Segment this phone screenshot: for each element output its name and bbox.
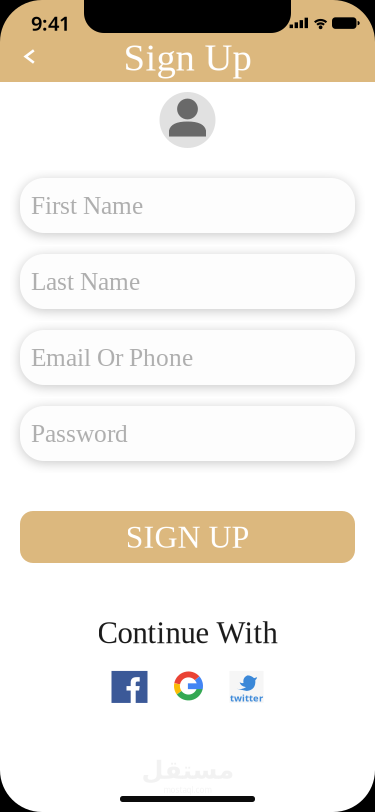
staticText: Password	[31, 419, 128, 448]
button[interactable]: SIGN UP	[20, 511, 355, 563]
staticText: Email Or Phone	[31, 343, 193, 372]
staticText: twitter	[230, 692, 263, 704]
button[interactable]: Continue with Twitter	[229, 671, 263, 703]
staticText: First Name	[31, 191, 143, 220]
staticText: Continue With	[97, 616, 277, 650]
button[interactable]: Continue with Facebook	[111, 671, 147, 703]
staticText: Last Name	[31, 267, 140, 296]
button[interactable]: Back	[0, 37, 55, 76]
staticText: مستقل	[141, 756, 234, 784]
staticText: Sign Up	[123, 36, 251, 79]
staticText: 9:41	[31, 10, 70, 36]
button[interactable]: Continue with Google	[173, 671, 203, 701]
staticText: SIGN UP	[125, 519, 249, 555]
